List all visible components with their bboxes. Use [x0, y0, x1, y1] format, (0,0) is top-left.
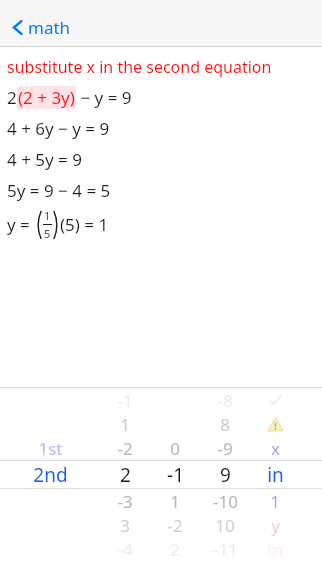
staticText: math [28, 16, 71, 39]
staticText: 1 [44, 208, 51, 223]
staticText: 1 [270, 490, 280, 513]
staticText: 2 [7, 86, 17, 109]
staticText: 4 + 6y − y = 9 [7, 117, 110, 140]
staticText: in [268, 538, 283, 561]
staticText: -2 [117, 437, 133, 460]
staticText: 0 [170, 437, 180, 460]
staticText: 1st [38, 437, 63, 460]
staticText: -11 [213, 538, 238, 561]
staticText: -4 [117, 538, 133, 561]
staticText: -8 [217, 389, 233, 412]
button[interactable]: Back [8, 14, 74, 41]
button[interactable]: 2nd [0, 461, 322, 488]
staticText: 5 [44, 226, 51, 241]
button[interactable]: 3 [0, 513, 322, 537]
button[interactable]: 1st [0, 436, 322, 460]
other: Back [11, 18, 24, 37]
staticText: 5y = 9 − 4 = 5 [7, 179, 111, 202]
staticText: -1 [117, 389, 133, 412]
staticText: 1 [170, 490, 180, 513]
staticText: y = [7, 213, 35, 236]
staticText: -3 [117, 490, 133, 513]
staticText: substitute x in the second equation [7, 56, 272, 78]
staticText: − y = 9 [76, 86, 132, 109]
staticText: 3 [120, 514, 130, 537]
staticText: 4 + 5y = 9 [7, 148, 82, 171]
staticText: y [271, 514, 280, 537]
staticText: x [271, 437, 280, 460]
button[interactable]: 1 [0, 412, 322, 436]
staticText: (2 + 3y) [18, 86, 75, 109]
staticText: in [267, 462, 284, 488]
staticText: -2 [167, 514, 183, 537]
staticText: 2 [120, 462, 131, 488]
staticText: (5) = 1 [60, 213, 109, 236]
staticText: 10 [215, 514, 235, 537]
staticText: 2 [170, 538, 180, 561]
staticText: -9 [217, 437, 233, 460]
staticText: -1 [167, 462, 184, 488]
staticText: 1 [120, 413, 130, 436]
staticText: 9 [220, 462, 231, 488]
button[interactable]: -3 [0, 489, 322, 513]
staticText: 8 [220, 413, 230, 436]
staticText: -10 [213, 490, 238, 513]
staticText: 2nd [33, 462, 68, 488]
